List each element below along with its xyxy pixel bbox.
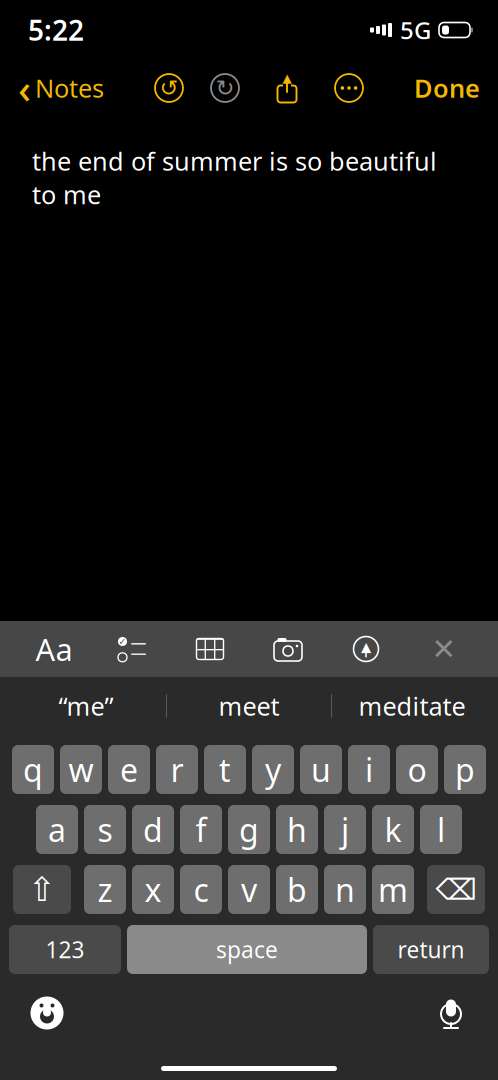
- staticText: Done: [414, 71, 480, 105]
- button[interactable]: a: [36, 805, 78, 854]
- staticText: 5:22: [28, 11, 84, 49]
- button[interactable]: x: [132, 865, 174, 914]
- staticText: ↺: [159, 75, 178, 101]
- button[interactable]: meditate: [332, 684, 492, 728]
- staticText: v: [241, 868, 257, 911]
- staticText: a: [48, 808, 66, 851]
- button[interactable]: j: [324, 805, 366, 854]
- staticText: x: [144, 868, 161, 911]
- button[interactable]: w: [60, 745, 102, 794]
- button[interactable]: 123: [9, 925, 121, 974]
- button[interactable]: c: [180, 865, 222, 914]
- button[interactable]: “me”: [6, 684, 166, 728]
- staticText: n: [335, 868, 355, 911]
- staticText: ▲: [361, 639, 371, 654]
- button[interactable]: Undo: [154, 73, 184, 103]
- staticText: m: [378, 868, 408, 911]
- staticText: r: [170, 748, 183, 791]
- button[interactable]: v: [228, 865, 270, 914]
- staticText: the end of summer is so beautiful to me: [32, 144, 437, 211]
- staticText: “me”: [58, 689, 113, 723]
- staticText: return: [397, 934, 464, 964]
- button[interactable]: t: [204, 745, 246, 794]
- button[interactable]: i: [348, 745, 390, 794]
- button[interactable]: Close keyboard: [424, 632, 464, 666]
- button[interactable]: Markup: [346, 632, 386, 666]
- button[interactable]: e: [108, 745, 150, 794]
- staticText: ✕: [431, 632, 456, 666]
- staticText: c: [193, 868, 208, 911]
- button[interactable]: z: [84, 865, 126, 914]
- button[interactable]: s: [84, 805, 126, 854]
- button[interactable]: q: [12, 745, 54, 794]
- button[interactable]: Done: [410, 71, 484, 105]
- staticText: ⌫: [435, 873, 476, 906]
- button[interactable]: More options: [334, 73, 364, 103]
- staticText: space: [216, 934, 278, 964]
- button[interactable]: y: [252, 745, 294, 794]
- staticText: ‹: [18, 61, 31, 114]
- button[interactable]: u: [300, 745, 342, 794]
- staticText: y: [265, 748, 281, 791]
- button[interactable]: b: [276, 865, 318, 914]
- staticText: w: [68, 748, 93, 791]
- staticText: o: [407, 748, 426, 791]
- button[interactable]: Dictate: [428, 990, 474, 1036]
- staticText: u: [311, 748, 331, 791]
- staticText: ▲: [282, 71, 291, 85]
- staticText: z: [97, 868, 112, 911]
- button[interactable]: Checklist: [112, 632, 152, 666]
- button[interactable]: Shift: [13, 865, 71, 914]
- staticText: f: [195, 808, 206, 851]
- button[interactable]: Camera: [268, 632, 308, 666]
- button[interactable]: Emoji keyboard: [24, 990, 70, 1036]
- button[interactable]: Delete: [427, 865, 485, 914]
- button[interactable]: h: [276, 805, 318, 854]
- button[interactable]: o: [396, 745, 438, 794]
- button[interactable]: Text format: [34, 632, 74, 666]
- button[interactable]: Table: [190, 632, 230, 666]
- staticText: p: [455, 748, 475, 791]
- button[interactable]: Redo: [210, 73, 240, 103]
- staticText: 123: [45, 934, 84, 964]
- button[interactable]: space: [127, 925, 367, 974]
- button[interactable]: g: [228, 805, 270, 854]
- staticText: t: [219, 748, 231, 791]
- button[interactable]: l: [420, 805, 462, 854]
- staticText: s: [97, 808, 112, 851]
- button[interactable]: m: [372, 865, 414, 914]
- button[interactable]: ‹: [14, 61, 108, 114]
- staticText: l: [437, 808, 445, 851]
- staticText: h: [287, 808, 307, 851]
- staticText: g: [239, 808, 259, 851]
- staticText: b: [287, 868, 307, 911]
- button[interactable]: Share: [272, 72, 302, 104]
- staticText: ↻: [215, 75, 234, 101]
- button[interactable]: p: [444, 745, 486, 794]
- button[interactable]: return: [373, 925, 489, 974]
- staticText: k: [384, 808, 401, 851]
- button[interactable]: r: [156, 745, 198, 794]
- staticText: Aa: [35, 629, 72, 669]
- button[interactable]: n: [324, 865, 366, 914]
- staticText: 5G: [400, 14, 431, 46]
- button[interactable]: f: [180, 805, 222, 854]
- staticText: e: [120, 748, 138, 791]
- button[interactable]: k: [372, 805, 414, 854]
- staticText: meet: [218, 689, 279, 723]
- button[interactable]: d: [132, 805, 174, 854]
- staticText: q: [23, 748, 43, 791]
- staticText: ✓: [118, 636, 126, 647]
- staticText: meditate: [358, 689, 465, 723]
- staticText: ⇧: [28, 871, 56, 908]
- staticText: Notes: [35, 71, 104, 105]
- staticText: i: [365, 748, 373, 791]
- staticText: j: [341, 808, 349, 851]
- staticText: d: [143, 808, 163, 851]
- button[interactable]: meet: [167, 684, 331, 728]
